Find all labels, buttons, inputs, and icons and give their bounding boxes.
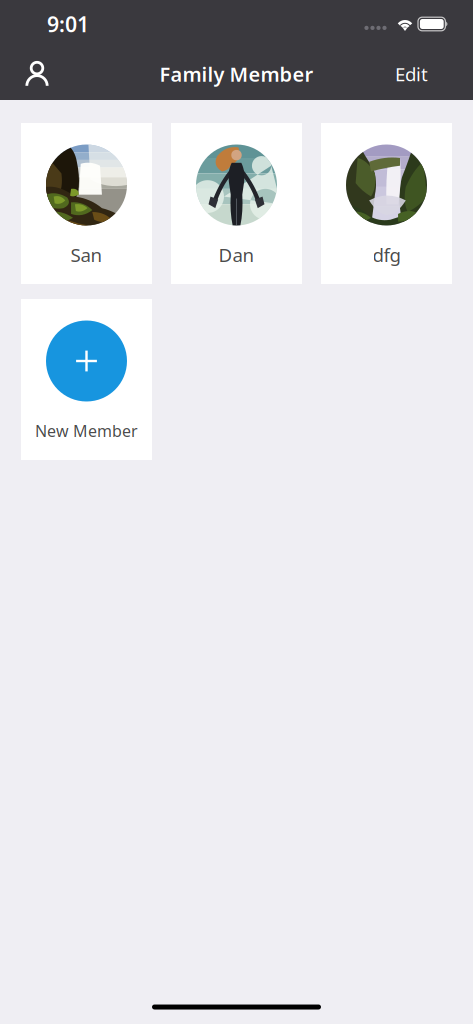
staticText: Family Member [159, 61, 313, 87]
staticText: dfg [372, 242, 400, 267]
button[interactable]: Edit [366, 48, 457, 100]
button[interactable]: Dan [171, 123, 302, 284]
staticText: San [70, 242, 102, 267]
button[interactable]: Profile [15, 48, 59, 100]
staticText: Edit [395, 62, 428, 86]
staticText: New Member [35, 420, 138, 441]
staticText: Dan [218, 242, 254, 267]
staticText: 9:01 [47, 10, 89, 38]
button[interactable]: dfg [321, 123, 452, 284]
button[interactable]: San [21, 123, 152, 284]
button[interactable]: New Member [21, 299, 152, 460]
